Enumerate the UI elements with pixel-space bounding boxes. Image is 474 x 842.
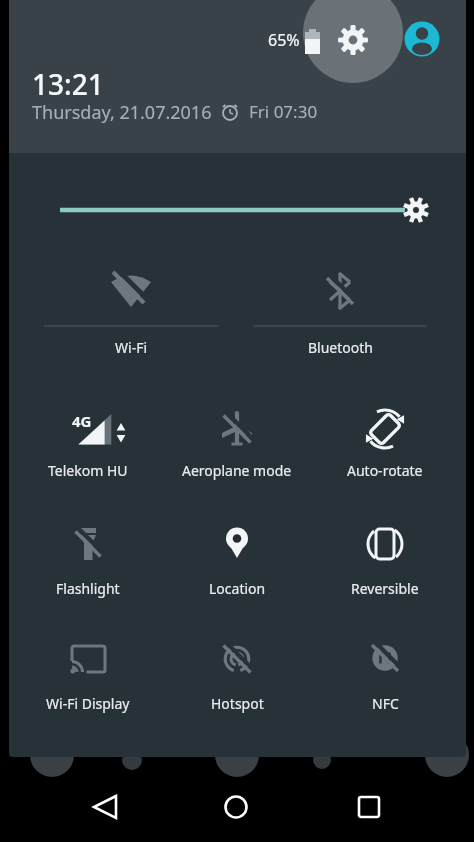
button[interactable]: Wi-Fi xyxy=(21,240,241,365)
staticText: 4G xyxy=(72,411,92,431)
button[interactable]: Wi-Fi Display xyxy=(13,605,163,717)
staticText: Fri 07:30 xyxy=(249,100,318,123)
staticText: 65% xyxy=(268,29,300,51)
button[interactable]: Telekom HU xyxy=(13,375,163,487)
staticText: Location xyxy=(209,579,266,598)
staticText: Telekom HU xyxy=(48,461,128,480)
staticText: Aeroplane mode xyxy=(182,461,292,480)
button[interactable] xyxy=(337,775,401,839)
button[interactable]: Hotspot xyxy=(162,605,312,717)
button[interactable]: Location xyxy=(162,490,312,602)
staticText: Bluetooth xyxy=(308,338,373,357)
staticText: Flashlight xyxy=(56,579,120,598)
button[interactable]: Flashlight xyxy=(13,490,163,602)
button[interactable] xyxy=(335,22,371,58)
staticText: 13:21 xyxy=(32,65,104,103)
staticText: Thursday, 21.07.2016 xyxy=(32,100,212,125)
button[interactable] xyxy=(204,775,268,839)
staticText: Wi-Fi xyxy=(115,338,148,357)
button[interactable]: Auto-rotate xyxy=(310,375,460,487)
button[interactable] xyxy=(73,775,137,839)
button[interactable]: Reversible xyxy=(310,490,460,602)
staticText: NFC xyxy=(372,694,399,713)
staticText: Reversible xyxy=(351,579,419,598)
staticText: Auto-rotate xyxy=(347,461,423,480)
staticText: Wi-Fi Display xyxy=(46,694,130,713)
button[interactable] xyxy=(404,21,440,57)
staticText: Hotspot xyxy=(211,694,264,713)
button[interactable] xyxy=(9,180,466,240)
button[interactable]: Bluetooth xyxy=(230,240,450,365)
button[interactable]: NFC xyxy=(310,605,460,717)
button[interactable]: Aeroplane mode xyxy=(162,375,312,487)
